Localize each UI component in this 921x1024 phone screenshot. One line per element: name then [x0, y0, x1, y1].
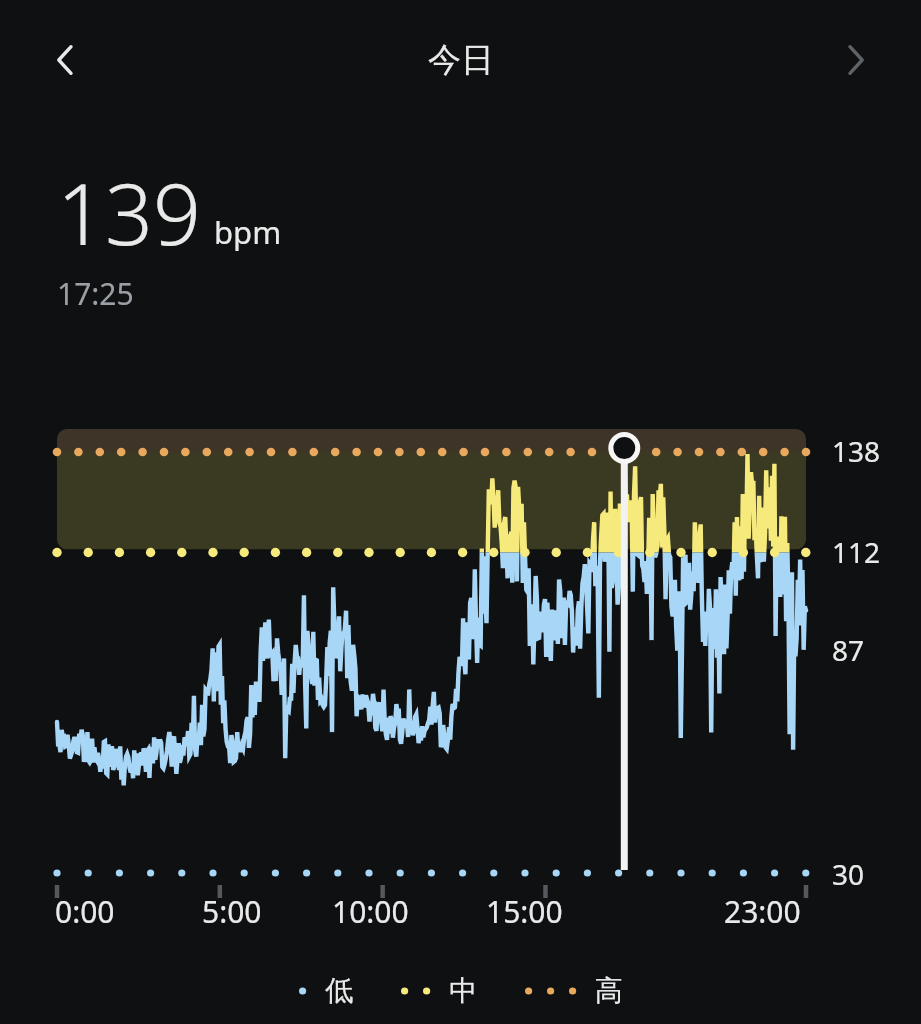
button[interactable]: Previous day: [26, 20, 106, 100]
staticText: 15:00: [486, 891, 563, 932]
staticText: 87: [832, 631, 865, 669]
button[interactable]: Next day: [815, 20, 895, 100]
staticText: 0:00: [55, 891, 115, 932]
staticText: 23:00: [724, 891, 801, 932]
staticText: bpm: [214, 211, 282, 253]
button[interactable]: 中: [401, 973, 477, 1008]
staticText: 17:25: [57, 273, 134, 314]
staticText: 138: [832, 432, 881, 470]
staticText: 低: [325, 973, 353, 1008]
staticText: 5:00: [202, 891, 262, 932]
staticText: 30: [832, 855, 865, 893]
staticText: 139: [57, 155, 201, 269]
staticText: 高: [595, 973, 623, 1008]
staticText: 今日: [428, 39, 494, 81]
staticText: 中: [449, 973, 477, 1008]
button[interactable]: 高: [525, 973, 623, 1008]
button[interactable]: 低: [299, 973, 353, 1008]
staticText: 112: [832, 533, 881, 571]
staticText: 10:00: [332, 891, 409, 932]
